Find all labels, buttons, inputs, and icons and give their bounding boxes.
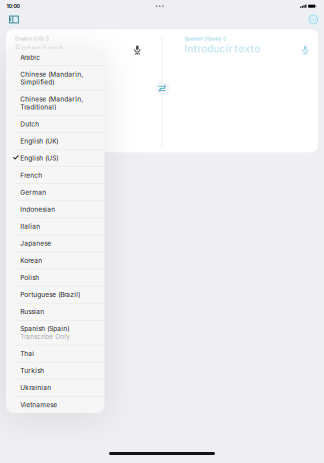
button[interactable]: Spanish (Spain) [6, 320, 104, 345]
staticText: Turkish [20, 367, 44, 375]
button[interactable]: Dutch [6, 116, 104, 132]
button[interactable]: Russian [6, 303, 104, 320]
button[interactable]: English (UK) [6, 133, 104, 149]
staticText: Spanish (Spain) [184, 35, 221, 42]
button[interactable]: Indonesian [6, 201, 104, 218]
staticText: Dutch [20, 120, 39, 128]
button[interactable]: Japanese [6, 235, 104, 252]
staticText: Indonesian [20, 205, 55, 213]
staticText: Chinese (Mandarin, Simplified) [20, 70, 83, 86]
button[interactable]: Chinese (Mandarin, Simplified) [6, 66, 104, 90]
staticText: Ukrainian [20, 384, 51, 392]
button[interactable]: Thai [6, 345, 104, 362]
staticText: Transcribe Only [20, 333, 70, 341]
staticText: Chinese (Mandarin, Traditional) [20, 95, 83, 111]
staticText: Spanish (Spain) [20, 325, 69, 332]
button[interactable]: Dictate Spanish [299, 43, 311, 56]
button[interactable]: More Options [307, 13, 320, 26]
staticText: English (US) [20, 154, 58, 162]
button[interactable]: Spanish (Spain) [184, 35, 226, 42]
button[interactable]: Turkish [6, 362, 104, 379]
button[interactable]: Dictate English [131, 43, 143, 56]
staticText: Japanese [20, 240, 51, 247]
button[interactable]: Ukrainian [6, 379, 104, 396]
staticText: 10:00 [6, 3, 19, 9]
button[interactable]: French [6, 167, 104, 184]
button[interactable]: Show Sidebar [7, 14, 20, 25]
staticText: Russian [20, 308, 44, 316]
button[interactable]: English (US) [6, 150, 104, 166]
staticText: English (US) [15, 35, 44, 42]
button[interactable]: Portuguese (Brazil) [6, 286, 104, 303]
staticText: German [20, 188, 46, 196]
staticText: French [20, 171, 42, 179]
button[interactable]: English (US) [15, 35, 49, 42]
button[interactable]: Swap Languages [155, 81, 169, 95]
staticText: Italian [20, 222, 40, 230]
staticText: Arabic [20, 53, 40, 61]
button[interactable]: Korean [6, 252, 104, 269]
staticText: Polish [20, 274, 39, 281]
button[interactable]: Chinese (Mandarin, Traditional) [6, 91, 104, 115]
staticText: Enter text [15, 43, 63, 55]
button[interactable]: German [6, 184, 104, 201]
button[interactable]: Arabic [6, 49, 104, 66]
staticText: Korean [20, 257, 42, 264]
button[interactable]: Vietnamese [6, 396, 104, 413]
staticText: Introducir texto [184, 43, 260, 55]
staticText: English (UK) [20, 137, 58, 145]
staticText: Thai [20, 350, 34, 357]
button[interactable]: Polish [6, 269, 104, 286]
staticText: Vietnamese [20, 401, 57, 409]
button[interactable]: Italian [6, 218, 104, 235]
staticText: Portuguese (Brazil) [20, 291, 80, 298]
